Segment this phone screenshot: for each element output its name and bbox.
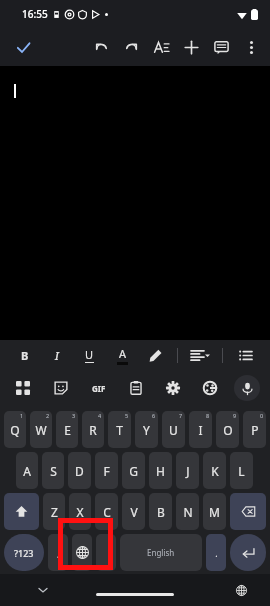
- button[interactable]: Comments: [206, 32, 236, 62]
- button[interactable]: Settings: [160, 375, 186, 401]
- staticText: G: [129, 463, 138, 479]
- staticText: Z: [51, 504, 58, 520]
- button[interactable]: Text formatting: [146, 32, 176, 62]
- staticText: E: [64, 422, 71, 438]
- button[interactable]: W: [30, 411, 52, 448]
- staticText: B: [21, 348, 29, 363]
- staticText: A: [23, 463, 31, 479]
- button[interactable]: Z: [43, 493, 65, 530]
- button[interactable]: L: [230, 452, 253, 489]
- staticText: Y: [143, 422, 150, 438]
- staticText: 6: [152, 412, 156, 419]
- button[interactable]: Underline: [78, 340, 100, 370]
- staticText: P: [251, 422, 259, 438]
- staticText: .: [215, 547, 218, 559]
- staticText: W: [35, 422, 47, 438]
- button[interactable]: Q: [4, 411, 26, 448]
- button[interactable]: Text color: [111, 340, 133, 370]
- staticText: 5: [125, 412, 129, 419]
- button[interactable]: P: [243, 411, 266, 448]
- staticText: 9: [233, 412, 237, 419]
- button[interactable]: Enter: [230, 534, 266, 571]
- button[interactable]: K: [203, 452, 226, 489]
- staticText: 3: [72, 412, 76, 419]
- button[interactable]: ,: [48, 534, 68, 571]
- button[interactable]: D: [68, 452, 91, 489]
- staticText: 7: [179, 412, 183, 419]
- button[interactable]: M: [203, 493, 226, 530]
- button[interactable]: Clipboard: [123, 375, 149, 401]
- staticText: English: [147, 547, 175, 558]
- button[interactable]: I: [189, 411, 212, 448]
- button[interactable]: V: [122, 493, 145, 530]
- button[interactable]: Undo: [86, 32, 116, 62]
- button[interactable]: C: [95, 493, 118, 530]
- staticText: 1: [20, 412, 24, 419]
- staticText: GIF: [92, 383, 106, 394]
- button[interactable]: Y: [135, 411, 158, 448]
- button[interactable]: [96, 534, 116, 571]
- button[interactable]: Switch language: [72, 534, 92, 571]
- staticText: F: [103, 463, 110, 479]
- button[interactable]: U: [162, 411, 185, 448]
- staticText: U: [85, 347, 94, 362]
- button[interactable]: J: [176, 452, 199, 489]
- staticText: 4: [98, 412, 102, 419]
- staticText: D: [75, 463, 84, 479]
- button[interactable]: English: [120, 534, 202, 571]
- button[interactable]: ?123: [4, 534, 44, 571]
- button[interactable]: Change keyboard: [230, 579, 252, 601]
- staticText: 0: [260, 412, 264, 419]
- button[interactable]: S: [42, 452, 64, 489]
- staticText: N: [183, 504, 193, 520]
- button[interactable]: X: [69, 493, 91, 530]
- staticText: O: [223, 422, 233, 438]
- button[interactable]: .: [206, 534, 226, 571]
- button[interactable]: Bulleted list: [234, 340, 256, 370]
- staticText: S: [50, 463, 57, 479]
- staticText: K: [211, 463, 219, 479]
- button[interactable]: Stickers: [48, 375, 74, 401]
- staticText: ?123: [14, 547, 34, 559]
- button[interactable]: More options: [236, 32, 266, 62]
- staticText: B: [157, 504, 165, 520]
- button[interactable]: Bold: [14, 340, 36, 370]
- button[interactable]: Alignment: [189, 340, 211, 370]
- staticText: J: [186, 463, 190, 479]
- staticText: T: [116, 422, 123, 438]
- button[interactable]: A: [16, 452, 38, 489]
- button[interactable]: Done: [8, 32, 38, 62]
- button[interactable]: E: [56, 411, 78, 448]
- staticText: C: [103, 504, 111, 520]
- button[interactable]: Voice input: [234, 375, 260, 401]
- button[interactable]: R: [82, 411, 104, 448]
- button[interactable]: GIF: [86, 375, 112, 401]
- button[interactable]: O: [216, 411, 239, 448]
- staticText: I: [198, 422, 203, 438]
- staticText: A: [119, 346, 127, 361]
- staticText: M: [209, 504, 220, 520]
- button[interactable]: Italic: [46, 340, 68, 370]
- button[interactable]: T: [108, 411, 131, 448]
- staticText: I: [55, 348, 59, 363]
- button[interactable]: Themes: [197, 375, 223, 401]
- staticText: ,: [57, 547, 60, 559]
- button[interactable]: Highlight: [144, 340, 166, 370]
- button[interactable]: F: [95, 452, 118, 489]
- button[interactable]: Keyboard menu: [10, 375, 36, 401]
- button[interactable]: B: [149, 493, 172, 530]
- staticText: 2: [46, 412, 50, 419]
- button[interactable]: G: [122, 452, 145, 489]
- button[interactable]: Shift: [4, 493, 39, 530]
- staticText: V: [130, 504, 138, 520]
- button[interactable]: Insert: [176, 32, 206, 62]
- button[interactable]: Hide keyboard: [32, 579, 54, 601]
- staticText: 8: [206, 412, 210, 419]
- button[interactable]: Backspace: [230, 493, 266, 530]
- staticText: L: [238, 463, 245, 479]
- staticText: R: [89, 422, 97, 438]
- button[interactable]: Redo: [116, 32, 146, 62]
- button[interactable]: H: [149, 452, 172, 489]
- staticText: H: [156, 463, 165, 479]
- button[interactable]: N: [176, 493, 199, 530]
